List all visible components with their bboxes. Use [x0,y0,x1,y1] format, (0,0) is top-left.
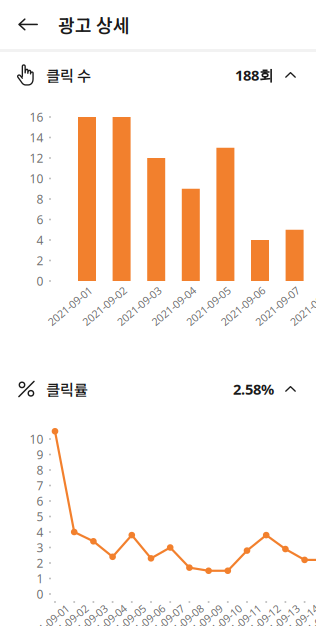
staticText: 2021-09-07 [251,299,305,313]
staticText: 2021-09-05 [181,299,235,313]
button[interactable]: Back [0,0,48,49]
staticText: 2021-09-01 [20,617,74,626]
staticText: 16 [29,109,43,125]
staticText: 2021-09-14 [270,617,316,626]
staticText: 6 [36,211,43,227]
staticText: 2021-09-04 [147,299,201,313]
staticText: 5 [36,508,43,524]
staticText: 2021-09-02 [39,617,93,626]
staticText: 2021-09-05 [97,617,151,626]
staticText: 188회 [235,65,274,85]
staticText: 10 [29,431,43,447]
staticText: 2021-09-12 [231,617,285,626]
staticText: 2 [36,252,43,268]
staticText: 2021-09-10 [193,617,247,626]
staticText: 2 [36,555,43,571]
staticText: 10 [29,170,43,186]
staticText: 8 [36,462,43,478]
button[interactable]: 클릭 수 [0,58,316,92]
staticText: 2.58% [233,379,274,399]
staticText: 2021-09-09 [174,617,228,626]
staticText: 0 [36,586,43,602]
staticText: 0 [36,273,43,289]
staticText: 2021-09-03 [58,617,112,626]
staticText: 6 [36,493,43,509]
staticText: 9 [36,446,43,462]
staticText: 8 [36,191,43,207]
staticText: 14 [29,129,43,145]
staticText: 클릭 수 [46,64,91,86]
staticText: 2021-09-01 [43,299,97,313]
staticText: 2021-09-02 [78,299,132,313]
staticText: 12 [29,150,43,166]
staticText: 클릭률 [46,378,88,400]
staticText: 2021-09-08 [154,617,208,626]
staticText: 2021-09-15 [289,617,316,626]
staticText: 2021-09-07 [135,617,189,626]
staticText: 2021-09-06 [116,617,170,626]
staticText: 2021-09-11 [212,617,266,626]
staticText: 4 [36,524,43,540]
staticText: 3 [36,539,43,555]
button[interactable]: 클릭률 [0,372,316,406]
staticText: 2021-09-03 [112,299,166,313]
staticText: 2021-09-06 [216,299,270,313]
staticText: 7 [36,477,43,493]
staticText: 광고 상세 [58,11,130,38]
staticText: 1 [36,570,43,586]
staticText: 2021-09-13 [250,617,304,626]
staticText: 2021-09-04 [78,617,132,626]
staticText: 4 [36,232,43,248]
staticText: 2021-09-08 [285,299,316,313]
